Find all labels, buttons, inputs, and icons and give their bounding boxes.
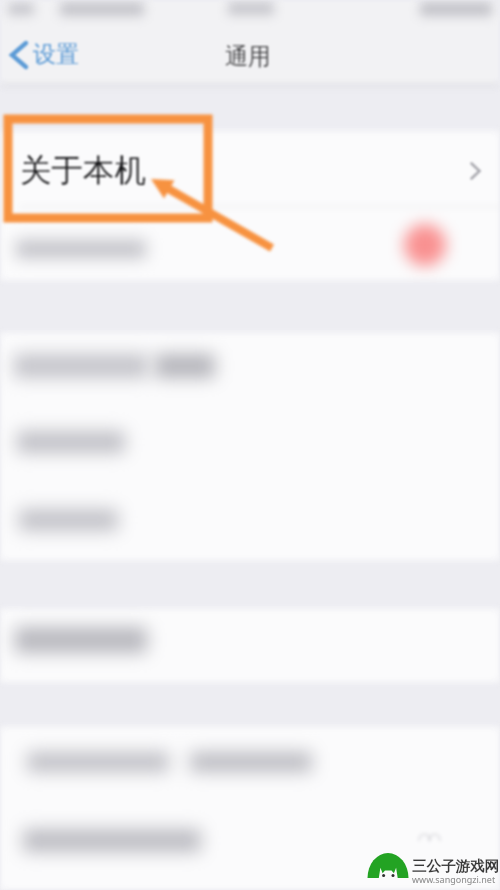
button[interactable]: Settings item	[0, 409, 500, 485]
staticText: 三公子游戏网	[412, 857, 499, 875]
other: Back	[10, 41, 28, 69]
staticText: 关于本机	[20, 151, 146, 191]
button[interactable]: Back	[2, 36, 88, 73]
button[interactable]: Settings item	[0, 805, 500, 885]
other: Highlight annotation	[0, 0, 500, 890]
staticText: www.sangongzi.net	[412, 873, 496, 885]
button[interactable]: Settings item	[0, 609, 500, 682]
button[interactable]: 关于本机	[0, 134, 500, 207]
staticText: 设置	[33, 40, 79, 69]
button[interactable]: Settings item	[0, 727, 500, 801]
staticText: 通用	[225, 42, 271, 71]
button[interactable]: Settings item	[0, 333, 500, 409]
button[interactable]: Settings item	[0, 207, 500, 280]
button[interactable]: Settings item	[0, 485, 500, 560]
